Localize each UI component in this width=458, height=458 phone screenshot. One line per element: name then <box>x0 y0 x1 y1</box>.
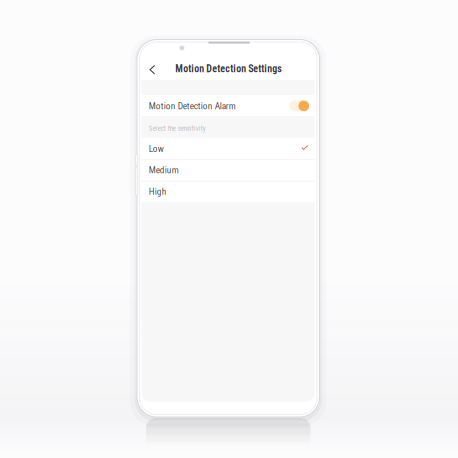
button[interactable]: Back <box>143 58 161 82</box>
staticText: Select the sensitivity <box>149 124 206 132</box>
staticText: Motion Detection Settings <box>175 63 282 75</box>
staticText: Low <box>149 143 164 154</box>
button[interactable]: Medium <box>141 159 314 181</box>
button[interactable]: Low <box>141 138 314 159</box>
staticText: Medium <box>149 165 179 175</box>
button[interactable]: Motion Detection Alarm <box>141 95 314 116</box>
staticText: High <box>149 186 167 197</box>
button[interactable]: High <box>141 181 314 202</box>
staticText: Motion Detection Alarm <box>149 100 236 111</box>
